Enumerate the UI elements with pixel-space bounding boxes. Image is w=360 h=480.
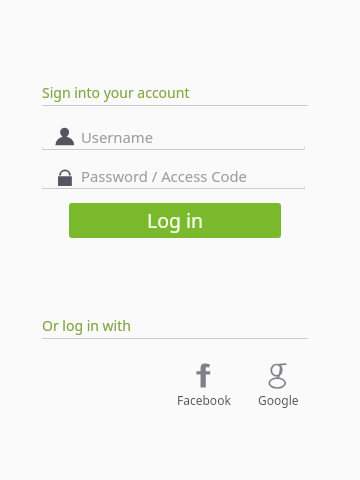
staticText: Password / Access Code [81,166,247,186]
button[interactable]: Password [42,161,305,189]
button[interactable]: Log in [69,203,281,238]
staticText: Or log in with [42,316,131,335]
staticText: Username [81,127,153,147]
button[interactable]: Username [42,122,305,150]
staticText: Facebook [177,392,231,408]
staticText: Sign into your account [42,83,190,102]
staticText: Log in [147,207,204,234]
button[interactable]: Facebook [168,360,240,408]
staticText: Google [258,392,299,408]
button[interactable]: Google [242,360,314,408]
